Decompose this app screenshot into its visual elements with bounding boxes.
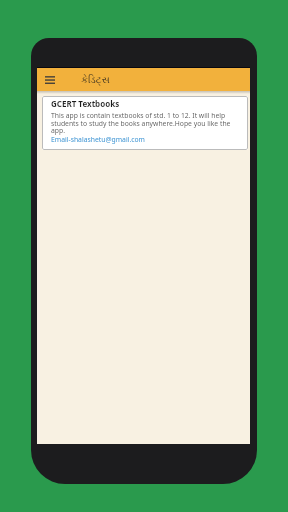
button[interactable]: GCERT Textbooks	[51, 98, 242, 144]
button[interactable]: Email-shalashetu@gmail.com	[51, 135, 145, 144]
staticText: This app is contain textbooks of std. 1 …	[51, 111, 231, 135]
staticText: GCERT Textbooks	[51, 98, 120, 109]
staticText: કેડિટ્સ	[81, 75, 110, 85]
button[interactable]	[45, 75, 55, 85]
